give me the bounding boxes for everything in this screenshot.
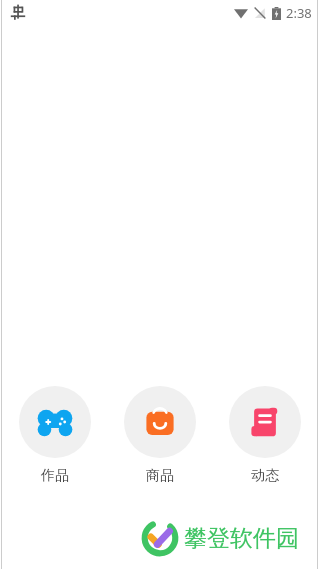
staticText: 攀登软件园 xyxy=(184,524,299,553)
staticText: 2:38 xyxy=(286,4,312,22)
staticText: 作品 xyxy=(41,467,69,485)
other: App icon xyxy=(8,3,28,23)
button[interactable]: Works xyxy=(19,386,91,485)
staticText: 商品 xyxy=(146,467,174,485)
button[interactable]: Goods xyxy=(124,386,196,485)
button[interactable]: Feed xyxy=(229,386,301,485)
staticText: 动态 xyxy=(251,467,279,485)
